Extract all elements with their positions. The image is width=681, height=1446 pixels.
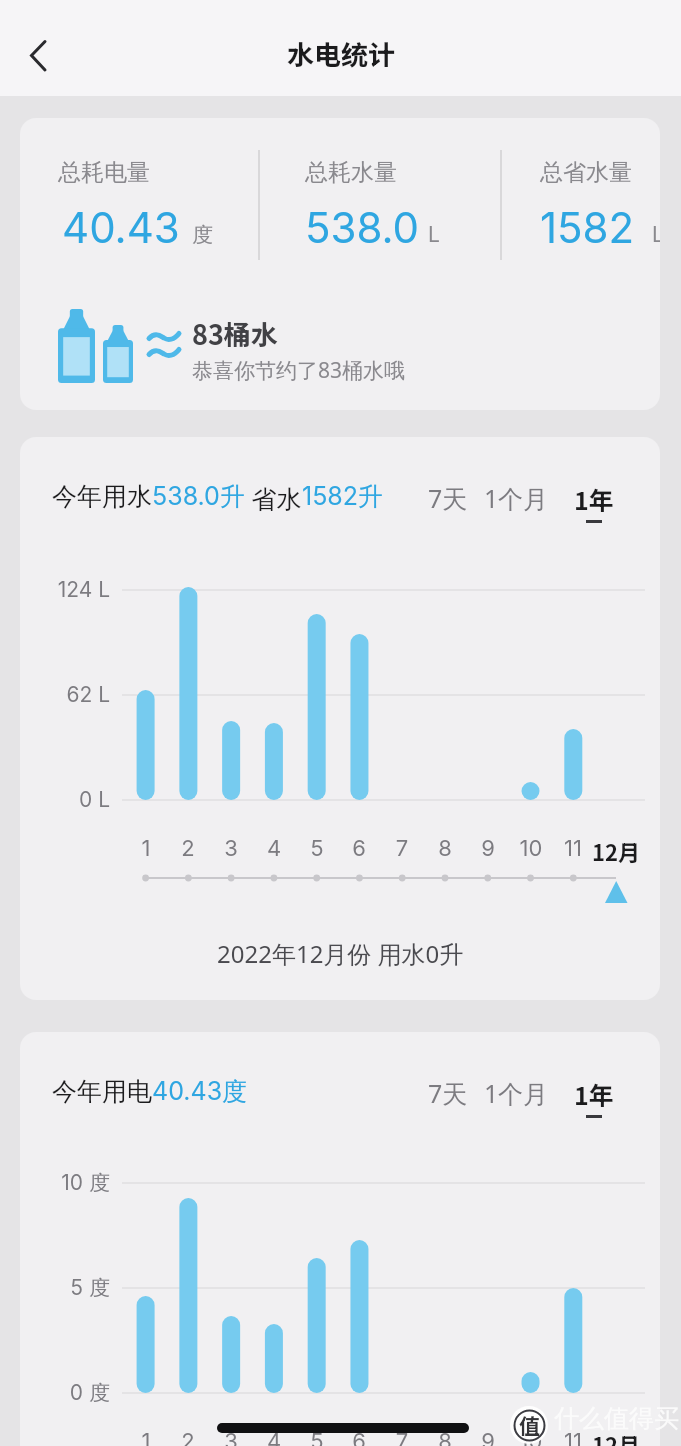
staticText: 什么值得买	[554, 1403, 679, 1434]
staticText: 11	[553, 835, 593, 862]
staticText: 11	[553, 1428, 593, 1446]
button[interactable]: 1年	[574, 1076, 614, 1112]
button[interactable]: 1个月	[484, 1076, 549, 1110]
staticText: 3	[211, 835, 251, 862]
staticText: 省水	[245, 481, 302, 515]
staticText: 40.43	[62, 202, 180, 253]
staticText: 538.0升	[152, 481, 245, 513]
staticText: 0 L	[33, 787, 110, 812]
button[interactable]: 1个月	[484, 481, 549, 515]
staticText: 7	[382, 1428, 422, 1446]
staticText: 2	[168, 1428, 208, 1446]
staticText: 1个月	[484, 481, 549, 515]
staticText: 1	[126, 1428, 166, 1446]
staticText: 度	[192, 222, 213, 248]
staticText: 5	[297, 835, 337, 862]
staticText: 9	[468, 1428, 508, 1446]
staticText: 7天	[428, 1076, 468, 1110]
staticText: 总耗水量	[305, 158, 397, 187]
staticText: 今年用电	[52, 1076, 152, 1107]
staticText: 6	[339, 835, 379, 862]
staticText: L	[652, 222, 660, 247]
staticText: 40.43度	[152, 1076, 248, 1108]
button[interactable]: 7天	[428, 1076, 468, 1110]
staticText: 总省水量	[540, 158, 632, 187]
staticText: 1年	[574, 481, 614, 517]
button[interactable]	[12, 33, 64, 81]
staticText: 2	[168, 835, 208, 862]
staticText: 8	[425, 1428, 465, 1446]
button[interactable]: 7天	[428, 481, 468, 515]
staticText: 83桶水	[192, 314, 278, 353]
staticText: 12月	[586, 1428, 646, 1446]
staticText: 7	[382, 835, 422, 862]
staticText: 9	[468, 835, 508, 862]
button[interactable]: 1年	[574, 481, 614, 517]
staticText: 水电统计	[287, 34, 395, 73]
staticText: L	[428, 222, 440, 247]
staticText: 3	[211, 1428, 251, 1446]
staticText: 1年	[574, 1076, 614, 1112]
staticText: 5	[297, 1428, 337, 1446]
staticText: 4	[254, 835, 294, 862]
staticText: 12月	[586, 835, 646, 867]
staticText: 538.0	[305, 202, 420, 253]
staticText: 6	[339, 1428, 379, 1446]
staticText: 1582	[540, 202, 635, 253]
staticText: 4	[254, 1428, 294, 1446]
staticText: 1582升	[302, 481, 384, 513]
staticText: 0 度	[33, 1380, 110, 1407]
staticText: 62 L	[33, 682, 110, 707]
staticText: 5 度	[33, 1275, 110, 1302]
staticText: 值	[519, 1410, 540, 1440]
staticText: 124 L	[33, 577, 110, 602]
staticText: 8	[425, 835, 465, 862]
staticText: 1	[126, 835, 166, 862]
staticText: 10	[511, 1428, 551, 1446]
staticText: 今年用水	[52, 481, 152, 512]
staticText: 1个月	[484, 1076, 549, 1110]
staticText: 10	[511, 835, 551, 862]
staticText: 7天	[428, 481, 468, 515]
staticText: 2022年12月份 用水0升	[217, 937, 464, 970]
staticText: 10 度	[33, 1170, 110, 1197]
staticText: 恭喜你节约了83桶水哦	[192, 356, 406, 385]
staticText: 总耗电量	[58, 158, 150, 187]
